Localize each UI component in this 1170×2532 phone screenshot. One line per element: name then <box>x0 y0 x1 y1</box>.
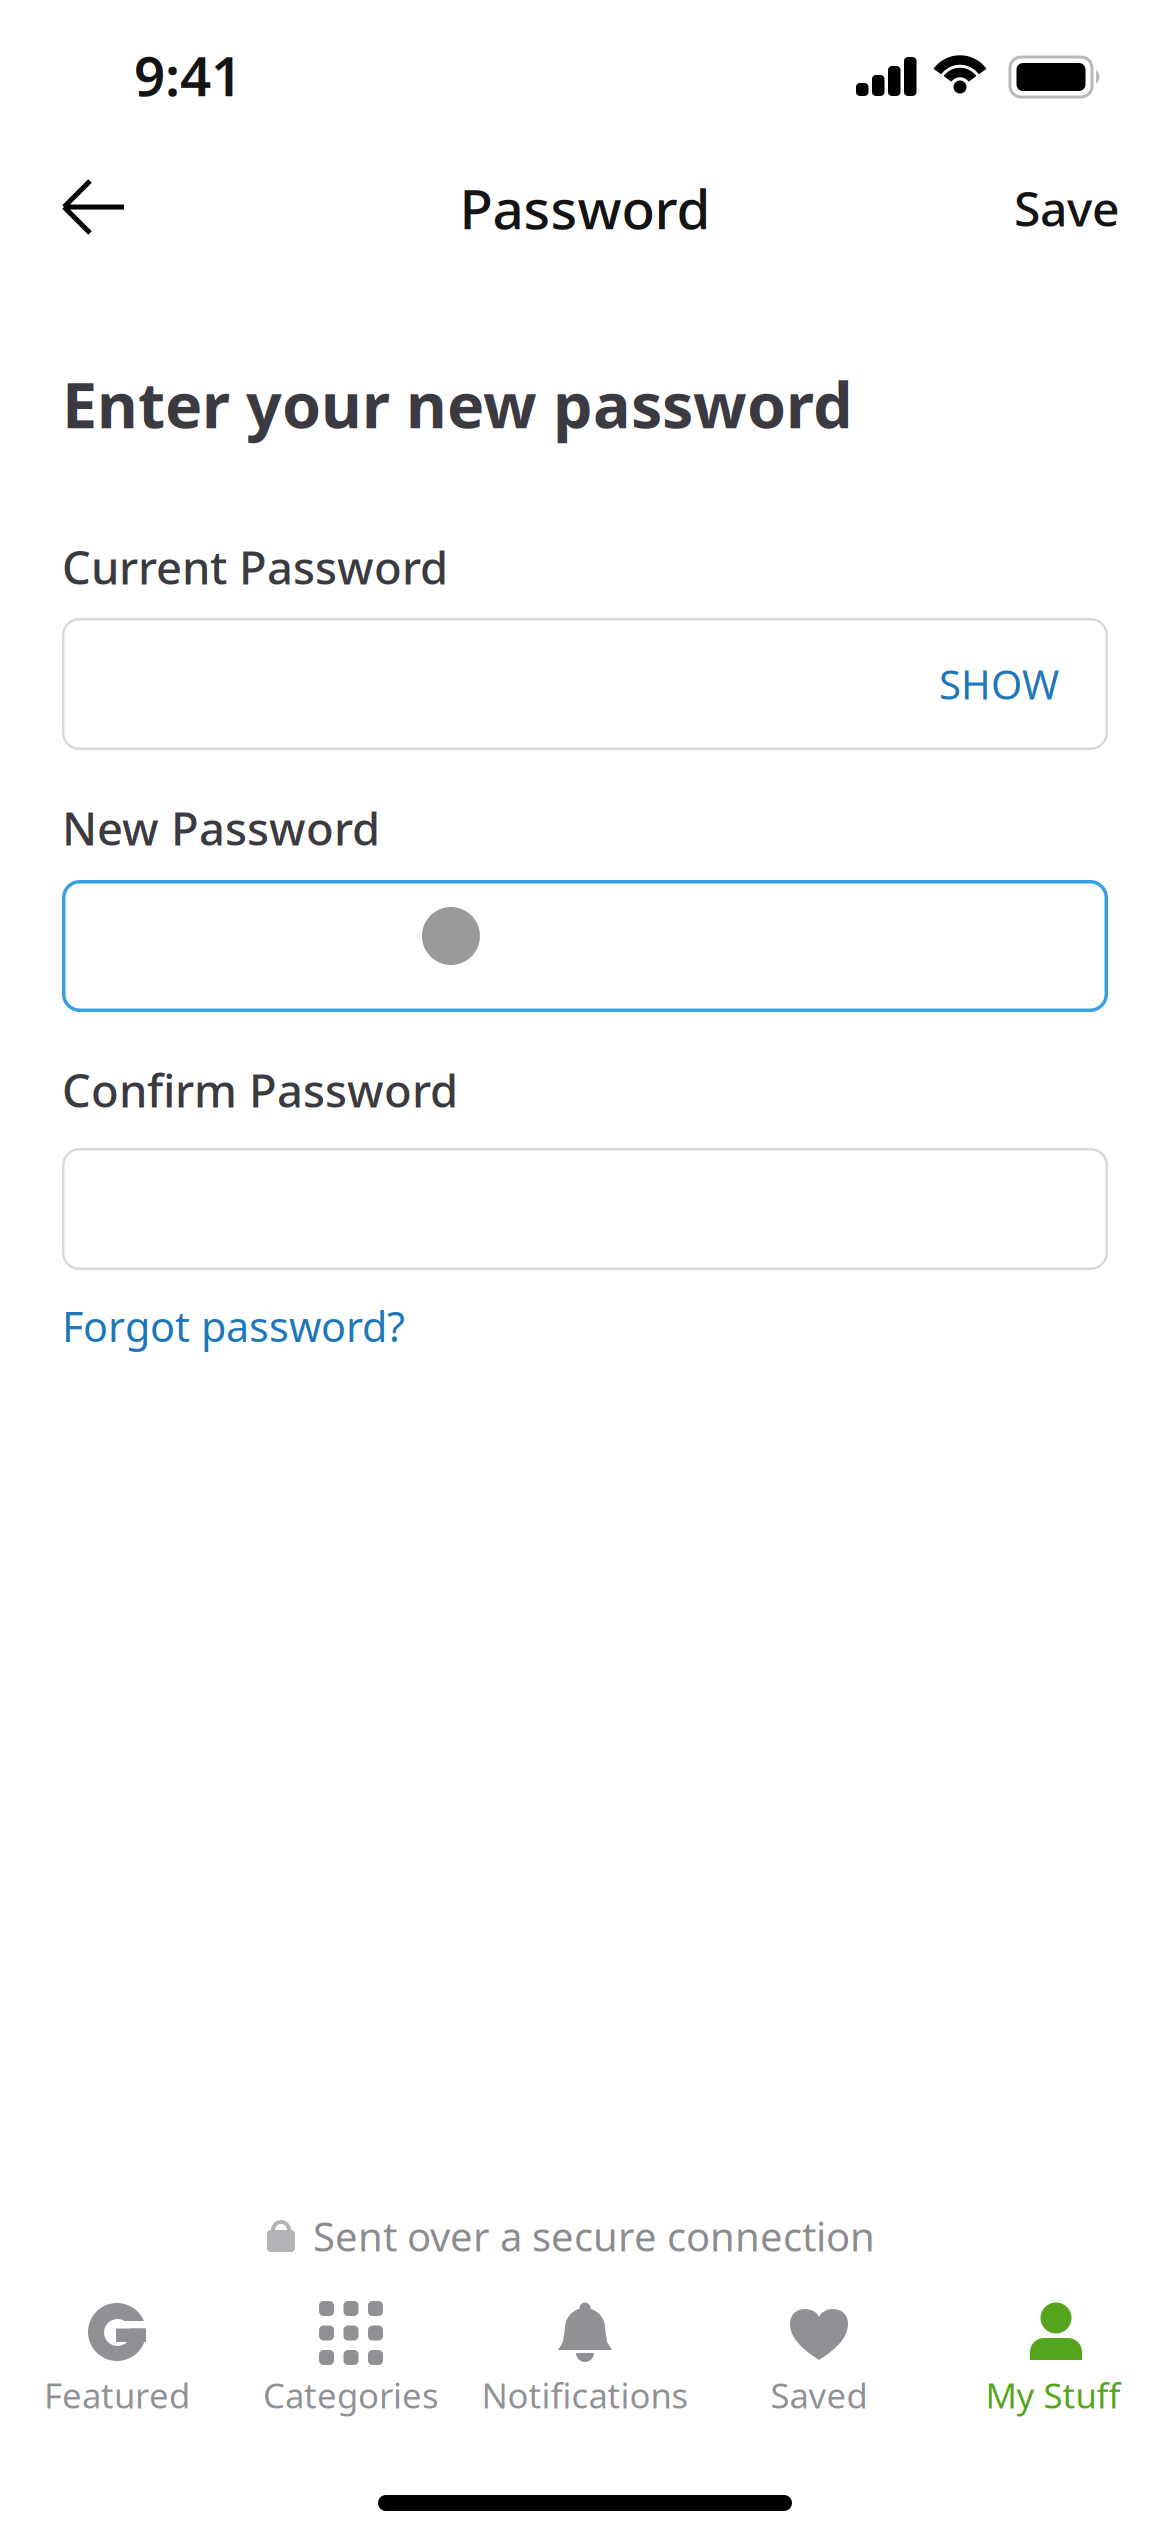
staticText: Save <box>1014 176 1120 240</box>
staticText: My Stuff <box>985 2372 1120 2418</box>
staticText: Confirm Password <box>62 1060 458 1120</box>
staticText: New Password <box>62 798 380 858</box>
button[interactable] <box>62 1148 1108 1270</box>
button[interactable]: Notifications <box>468 2302 702 2442</box>
button[interactable]: My Stuff <box>936 2302 1170 2442</box>
button[interactable] <box>62 618 1108 750</box>
staticText: Notifications <box>481 2372 688 2418</box>
staticText: Saved <box>770 2372 867 2418</box>
staticText: Sent over a secure connection <box>313 2209 875 2262</box>
staticText: Featured <box>44 2372 190 2418</box>
button[interactable]: Featured <box>0 2302 234 2442</box>
button[interactable]: Forgot password? <box>62 1296 562 1356</box>
staticText: SHOW <box>939 657 1059 710</box>
staticText: Current Password <box>62 537 448 597</box>
staticText: Categories <box>263 2372 439 2418</box>
button[interactable] <box>54 176 134 238</box>
button[interactable] <box>378 2495 792 2511</box>
button[interactable] <box>62 880 1108 1012</box>
button[interactable]: Saved <box>702 2302 936 2442</box>
staticText: Enter your new password <box>62 362 853 446</box>
button[interactable]: SHOW <box>859 649 1059 719</box>
button[interactable]: Save <box>900 178 1120 238</box>
staticText: Forgot password? <box>62 1299 405 1353</box>
staticText: 9:41 <box>134 39 242 111</box>
staticText: Password <box>459 172 710 244</box>
button[interactable]: Categories <box>234 2302 468 2442</box>
